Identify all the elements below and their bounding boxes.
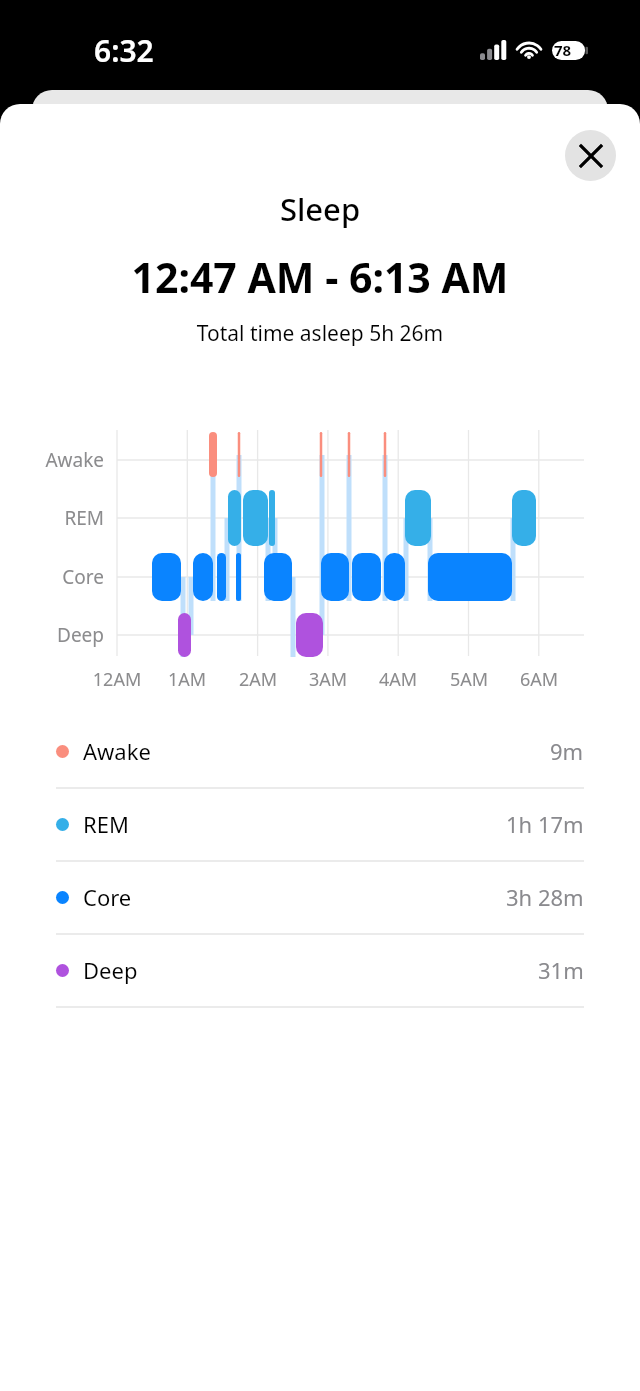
staticText: Deep bbox=[0, 622, 104, 648]
staticText: Core bbox=[83, 882, 132, 912]
staticText: 6:32 bbox=[94, 30, 154, 71]
staticText: 1h 17m bbox=[506, 809, 584, 839]
staticText: 12:47 AM - 6:13 AM bbox=[0, 249, 640, 305]
staticText: REM bbox=[83, 809, 129, 839]
staticText: Core bbox=[0, 564, 104, 590]
staticText: Awake bbox=[0, 447, 104, 473]
button[interactable]: Deep bbox=[0, 944, 640, 996]
staticText: 2AM bbox=[223, 667, 293, 692]
staticText: Awake bbox=[83, 736, 151, 766]
staticText: 3AM bbox=[293, 667, 363, 692]
button[interactable]: Core bbox=[0, 871, 640, 923]
button[interactable]: Awake bbox=[0, 725, 640, 777]
staticText: 4AM bbox=[363, 667, 433, 692]
staticText: 12AM bbox=[82, 667, 152, 692]
staticText: 6AM bbox=[504, 667, 574, 692]
staticText: Deep bbox=[83, 955, 138, 985]
staticText: Total time asleep 5h 26m bbox=[0, 319, 640, 348]
staticText: 31m bbox=[538, 955, 584, 985]
staticText: 3h 28m bbox=[506, 882, 584, 912]
button[interactable]: REM bbox=[0, 798, 640, 850]
staticText: 5AM bbox=[434, 667, 504, 692]
staticText: 9m bbox=[550, 736, 584, 766]
staticText: 1AM bbox=[152, 667, 222, 692]
button[interactable]: Close bbox=[565, 130, 616, 181]
staticText: Sleep bbox=[0, 188, 640, 230]
staticText: 78 bbox=[554, 40, 572, 60]
staticText: REM bbox=[0, 505, 104, 531]
